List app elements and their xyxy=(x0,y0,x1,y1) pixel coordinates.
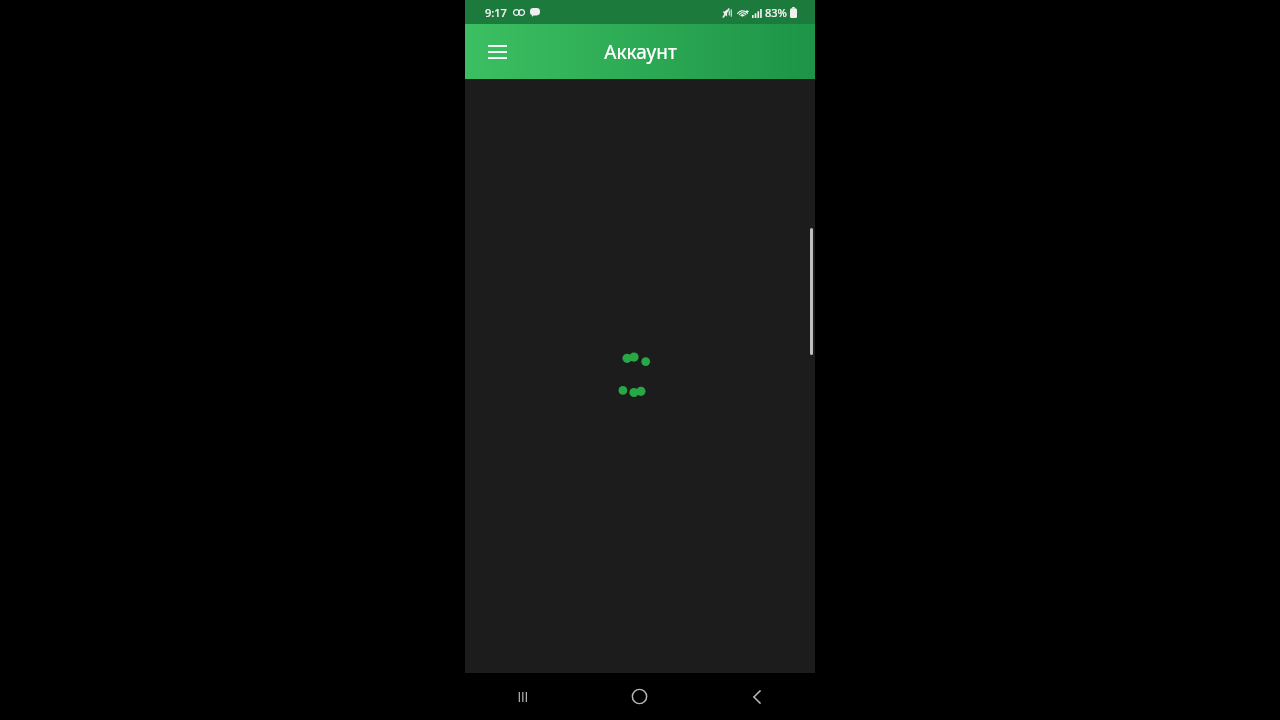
button[interactable]: Open navigation menu xyxy=(477,32,517,72)
staticText: Аккаунт xyxy=(604,39,677,65)
button[interactable]: Back xyxy=(698,673,815,720)
button[interactable]: Recent apps xyxy=(465,673,581,720)
button[interactable]: Home xyxy=(581,673,698,720)
staticText: 9:17 xyxy=(485,5,507,20)
staticText: 83% xyxy=(765,5,787,20)
